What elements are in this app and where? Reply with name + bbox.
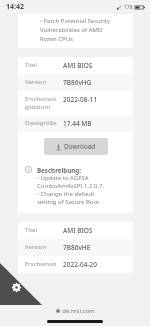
staticText: 7B86vHE [63,243,91,252]
button[interactable]: Titel [18,222,133,239]
button[interactable]: Version [18,239,133,256]
staticText: de.msi.com [62,307,95,315]
staticText: Version [25,78,47,86]
button[interactable]: Information [18,161,133,213]
staticText: AMI BIOS [63,61,93,70]
staticText: 2022-04-20 [63,260,97,269]
staticText: 17.44 MB [63,119,92,128]
staticText: - Patch Potential Security Vulnerabiliti… [40,17,111,42]
staticText: Version [25,243,47,251]
staticText: 14:42 [6,2,24,12]
other: Information [25,166,32,173]
button[interactable]: Erscheinun [18,256,133,273]
staticText: gsdatum [25,103,51,111]
staticText: 2022-08-11 [63,95,97,104]
staticText: Dateigröße [25,119,57,127]
staticText: Titel [25,61,37,69]
button[interactable]: Download [44,138,108,155]
staticText: Titel [25,226,37,234]
button[interactable]: Version [18,74,133,91]
button[interactable]: Titel [18,57,133,74]
button[interactable]: Erscheinun [18,91,133,115]
staticText: 7B86vHG [63,78,92,87]
button[interactable]: - Patch Potential Security Vulnerabiliti… [18,14,133,48]
staticText: 178 [124,4,133,11]
staticText: Erscheinun [25,260,57,268]
staticText: AMI BIOS [63,226,93,235]
staticText: Erscheinun [25,95,57,103]
button[interactable]: Settings [0,263,42,305]
button[interactable]: de.msi.com [0,305,150,316]
staticText: Download [64,142,96,151]
staticText: - Update to AGESA ComboAm4v2PI 1.2.0.7. … [37,174,105,206]
button[interactable]: Dateigröße [18,115,133,132]
staticText: Beschreibung: [37,166,81,174]
